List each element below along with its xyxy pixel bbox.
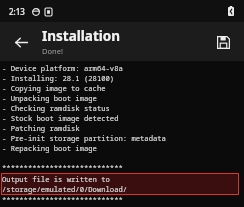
staticText: - Installing: 28.1 (28100) [2,73,115,83]
staticText: - Repacking boot image [2,143,97,153]
staticText: Output file is written to [2,174,110,184]
staticText: Done! [42,46,63,56]
staticText: **************************** [2,195,123,205]
staticText: - Stock boot image detected [2,113,119,123]
staticText: Installation [42,27,120,45]
staticText: **************************** [2,163,123,173]
staticText: - Pre-init storage partition: metadata [2,133,166,143]
staticText: - Copying image to cache [2,83,106,93]
staticText: - Patching ramdisk [2,123,80,133]
button[interactable]: Back [6,27,36,57]
staticText: - Checking ramdisk status [2,103,110,113]
button[interactable]: Save log [208,27,238,57]
staticText: - Device platform: arm64-v8a [2,63,123,73]
staticText: 2:13 [9,6,25,17]
staticText: - Unpacking boot image [2,93,97,103]
staticText: /storage/emulated/0/Download/magisk_patc… [2,184,238,194]
